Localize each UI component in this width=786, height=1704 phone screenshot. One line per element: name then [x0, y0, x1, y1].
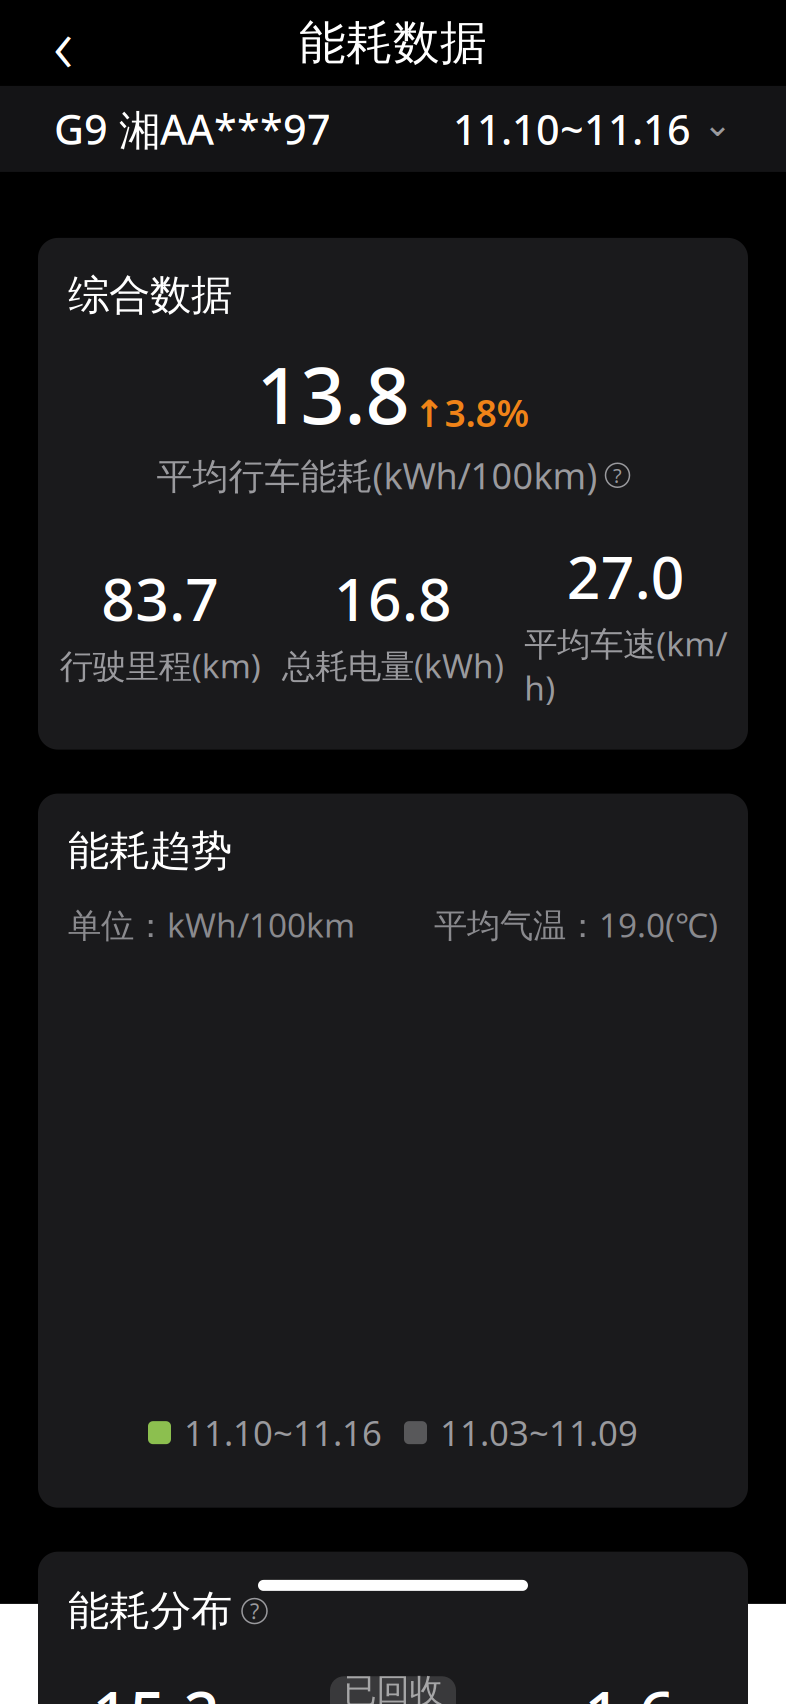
staticText: 11.03~11.09: [440, 1410, 638, 1456]
staticText: 13.8: [256, 343, 409, 445]
button[interactable]: 关于平均行车能耗: [605, 463, 629, 487]
staticText: 综合数据: [68, 270, 232, 321]
staticText: ‹: [53, 0, 73, 94]
staticText: 行驶里程(km): [60, 643, 261, 687]
staticText: 11.10~11.16: [453, 101, 691, 156]
staticText: ⌄: [703, 104, 732, 143]
staticText: 16.8: [334, 559, 452, 637]
staticText: 能耗趋势: [68, 826, 232, 876]
staticText: ↑3.8%: [413, 388, 529, 437]
staticText: 平均气温：19.0(℃): [434, 902, 718, 947]
staticText: ?: [250, 1597, 259, 1625]
staticText: 能耗分布: [68, 1586, 232, 1636]
staticText: 15.2: [92, 1671, 220, 1704]
staticText: 83.7: [101, 559, 219, 637]
button[interactable]: 关于能耗分布: [242, 1599, 267, 1624]
staticText: 1.6: [584, 1671, 675, 1704]
button[interactable]: Back: [24, 4, 102, 82]
staticText: G9 湘AA***97: [54, 101, 331, 156]
staticText: 能耗数据: [299, 14, 487, 71]
staticText: ?: [613, 462, 622, 489]
staticText: 11.10~11.16: [184, 1410, 382, 1456]
staticText: 单位：kWh/100km: [68, 902, 355, 947]
staticText: 平均行车能耗(kWh/100km): [156, 451, 597, 499]
button[interactable]: 11.10~11.16: [453, 101, 732, 156]
staticText: 27.0: [567, 537, 685, 615]
staticText: 平均车速(km/h): [524, 621, 727, 710]
staticText: 总耗电量(kWh): [282, 643, 504, 687]
staticText: 已回收: [343, 1670, 442, 1704]
